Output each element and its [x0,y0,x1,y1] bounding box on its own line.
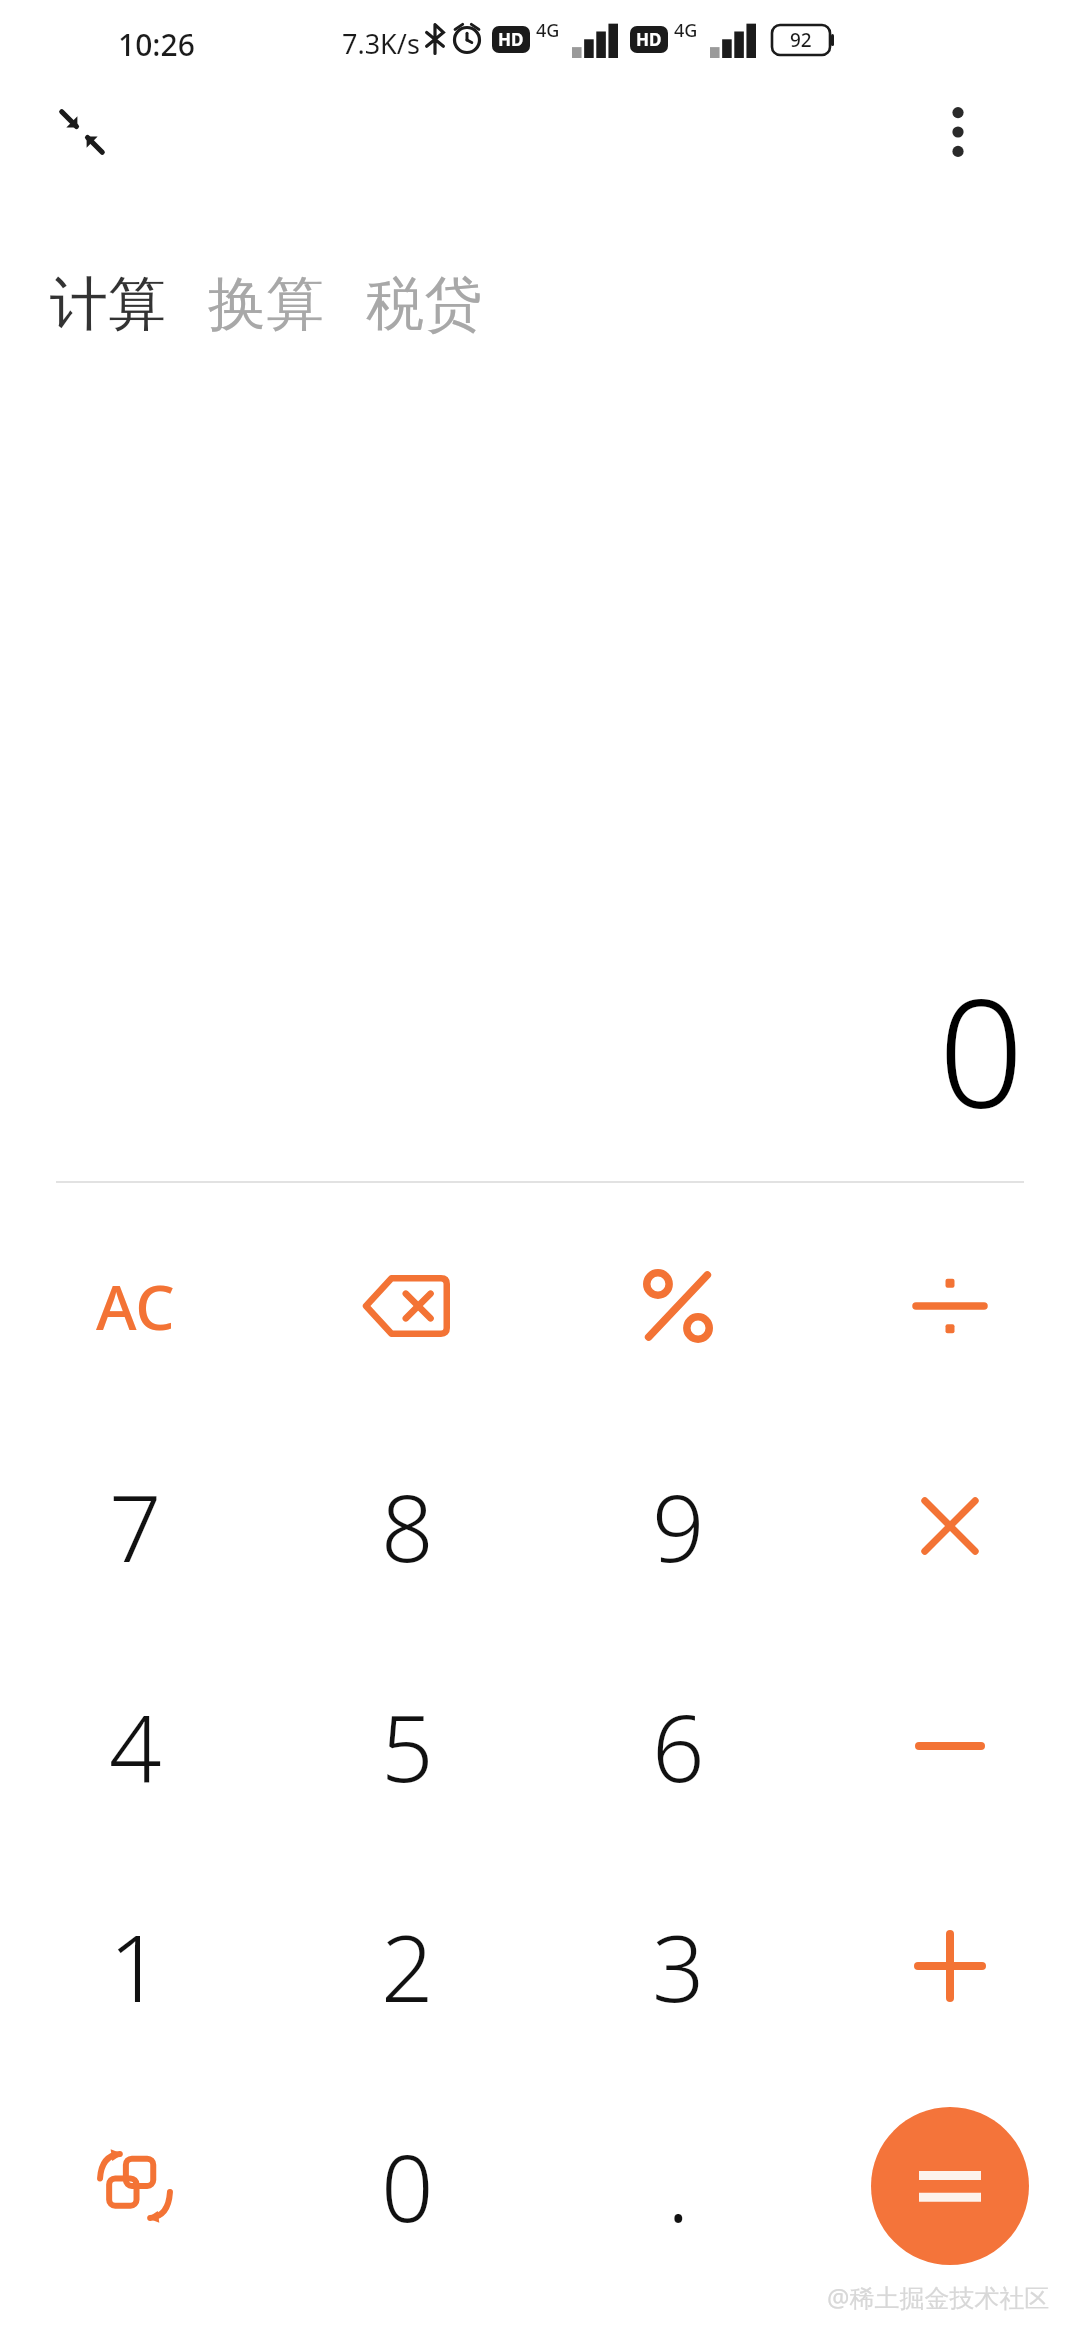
button[interactable]: 2 [287,1856,527,2076]
staticText: @稀土掘金技术社区 [827,2280,1050,2314]
button[interactable]: Minus [830,1636,1070,1856]
staticText: 换算 [208,268,324,341]
button[interactable]: AC [15,1196,255,1416]
staticText: 7.3K/s [342,25,420,62]
button[interactable]: 计算 [44,260,172,349]
button[interactable]: Multiply [830,1416,1070,1636]
staticText: 4G [674,18,698,43]
staticText: 4 [109,1684,162,1809]
button[interactable]: Equals [871,2107,1029,2265]
button[interactable]: Plus [830,1856,1070,2076]
button[interactable]: Convert [15,2076,255,2296]
staticText: 0 [938,948,1024,1152]
button[interactable]: 换算 [202,260,330,349]
staticText: 5 [381,1684,434,1809]
other: Divide [914,1275,986,1337]
staticText: AC [96,1264,175,1348]
button[interactable]: 4 [15,1636,255,1856]
button[interactable]: 3 [558,1856,798,2076]
other: Minus [917,1736,983,1756]
staticText: 1 [109,1904,162,2029]
button[interactable]: . [558,2076,798,2296]
staticText: 税贷 [366,268,482,341]
button[interactable]: 5 [287,1636,527,1856]
staticText: HD [498,28,524,51]
staticText: 6 [652,1684,705,1809]
other: Percent [643,1269,713,1343]
button[interactable]: Percent [558,1196,798,1416]
button[interactable]: 1 [15,1856,255,2076]
staticText: 3 [652,1904,705,2029]
staticText: 8 [381,1464,434,1589]
other: Plus [916,1932,984,2000]
staticText: HD [636,28,662,51]
button[interactable]: 6 [558,1636,798,1856]
button[interactable]: Divide [830,1196,1070,1416]
button[interactable]: 0 [287,2076,527,2296]
other: Multiply [920,1496,980,1556]
staticText: 4G [536,18,560,43]
other: Backspace [364,1275,450,1337]
button[interactable]: Backspace [287,1196,527,1416]
staticText: 0 [381,2124,434,2249]
button[interactable]: 7 [15,1416,255,1636]
other: Convert [97,2148,173,2224]
button[interactable]: 9 [558,1416,798,1636]
button[interactable]: 8 [287,1416,527,1636]
staticText: 9 [652,1464,705,1589]
button[interactable]: 税贷 [360,260,488,349]
button[interactable]: More options [916,90,1000,174]
staticText: 7 [109,1464,162,1589]
button[interactable]: Collapse [40,90,124,174]
staticText: . [667,2124,690,2249]
staticText: 92 [790,27,812,53]
staticText: 10:26 [118,24,195,65]
staticText: 2 [381,1904,434,2029]
staticText: 计算 [50,268,166,341]
